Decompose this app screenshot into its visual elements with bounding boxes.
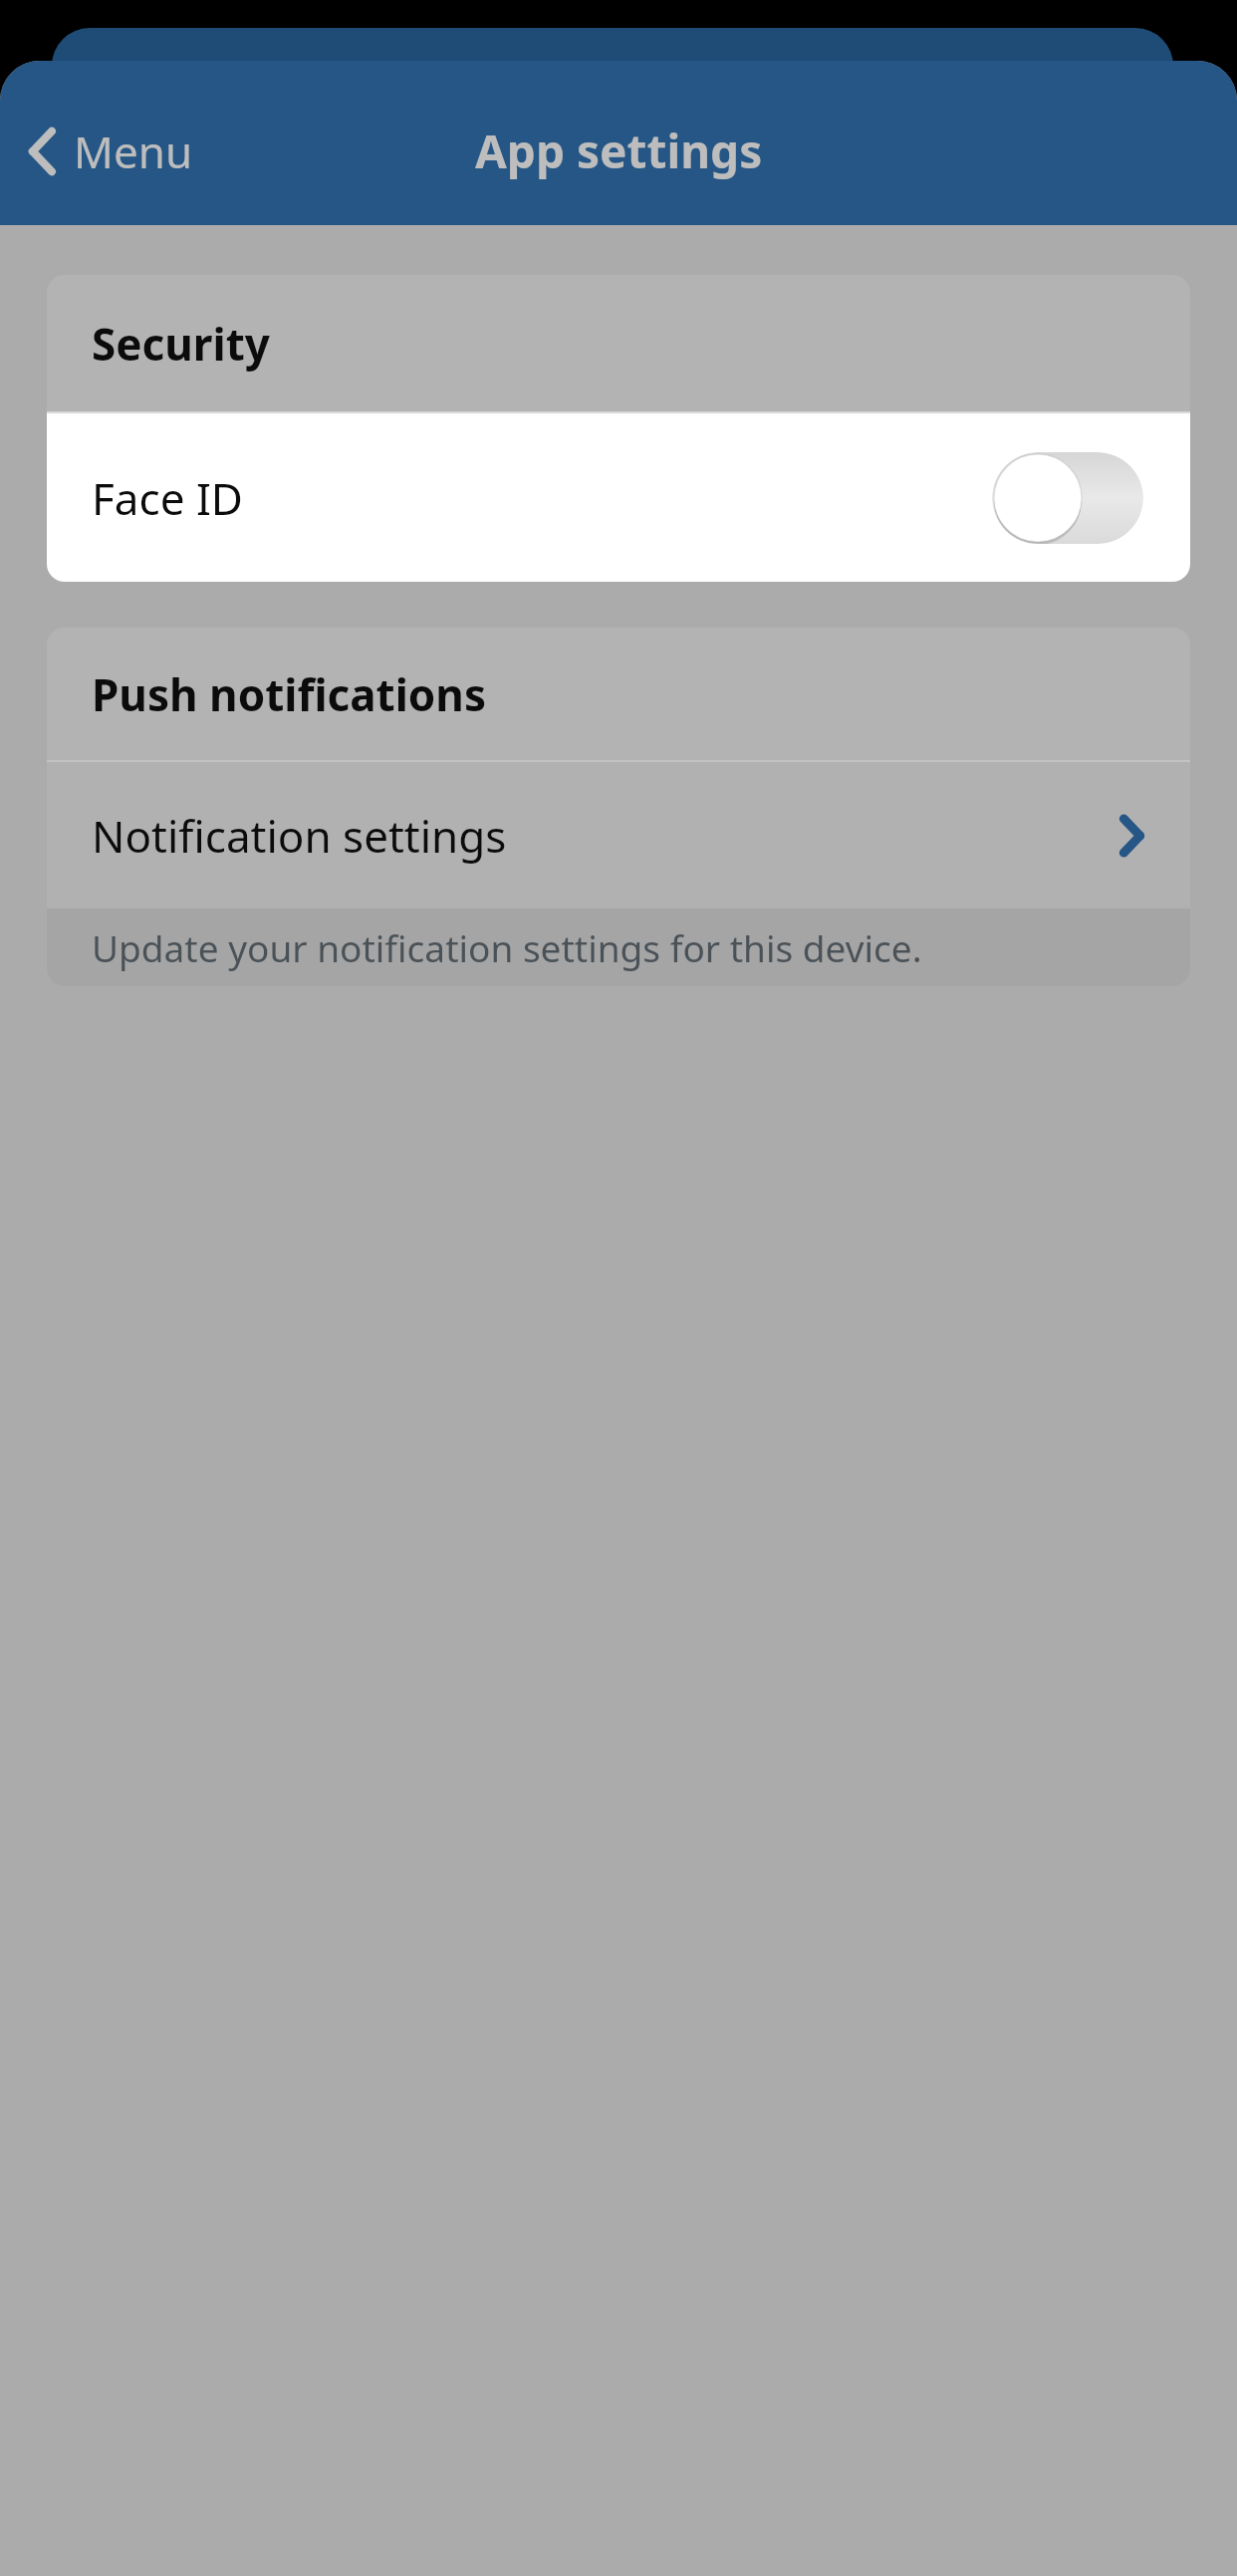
button[interactable]: Notification settings (47, 762, 1190, 908)
button[interactable]: Face ID (47, 413, 1190, 582)
staticText: Notification settings (92, 806, 507, 866)
staticText: Menu (74, 122, 193, 181)
button[interactable]: Menu (0, 110, 217, 193)
button[interactable]: Face ID toggle, off (992, 452, 1143, 544)
staticText: Face ID (92, 468, 243, 528)
staticText: Update your notification settings for th… (92, 922, 922, 972)
other: Open notification settings (1119, 817, 1143, 855)
staticText: App settings (475, 120, 763, 182)
staticText: Push notifications (92, 664, 487, 724)
staticText: Security (92, 314, 270, 374)
